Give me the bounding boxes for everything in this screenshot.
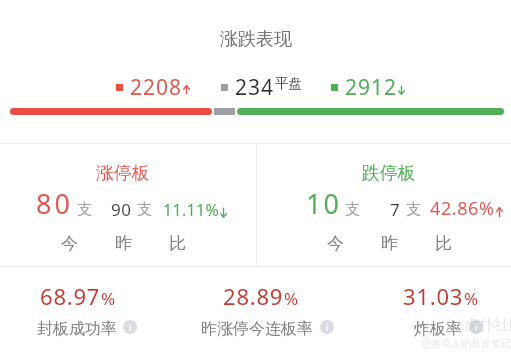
staticText: i — [129, 321, 132, 334]
button[interactable]: 封板成功率 — [37, 319, 117, 339]
staticText: 234 — [235, 73, 275, 97]
staticText: 昨涨停今连板率 — [201, 319, 313, 339]
staticText: i — [326, 321, 329, 334]
staticText: 42.86% — [430, 196, 495, 221]
staticText: 支 — [77, 200, 92, 219]
staticText: % — [101, 287, 116, 310]
button[interactable]: 234 — [221, 73, 302, 97]
staticText: 涨跌表现 — [220, 28, 292, 51]
staticText: 封板成功率 — [37, 319, 117, 339]
button[interactable]: 2912 — [331, 73, 405, 97]
staticText: % — [284, 287, 299, 310]
staticText: 支 — [137, 200, 152, 219]
button[interactable]: 昨涨停今连板率 — [201, 319, 313, 339]
staticText: 2912 — [345, 73, 398, 97]
button[interactable]: 炸板率 — [414, 319, 462, 339]
staticText: 31.03 — [403, 281, 464, 311]
staticText: 今 — [61, 233, 78, 254]
staticText: 90 — [111, 198, 132, 221]
staticText: 支 — [345, 200, 360, 219]
staticText: 涨停板 — [96, 162, 150, 184]
staticText: 平盘 — [275, 75, 302, 92]
button[interactable]: 说明 — [123, 320, 137, 334]
staticText: 今 — [327, 233, 344, 254]
staticText: 7 — [390, 198, 401, 221]
staticText: 11.11% — [163, 199, 219, 221]
staticText: 2208 — [130, 73, 183, 97]
staticText: 28.89 — [223, 281, 284, 311]
staticText: 支 — [406, 200, 421, 219]
staticText: @洛克人的投资笔记 — [422, 336, 511, 350]
button[interactable]: 说明 — [320, 320, 334, 334]
staticText: 比 — [169, 233, 186, 254]
staticText: 炸板率 — [414, 319, 462, 339]
staticText: 10 — [306, 185, 341, 221]
button[interactable]: 说明 — [469, 320, 483, 334]
staticText: 跌停板 — [362, 162, 416, 184]
staticText: 昨 — [381, 233, 398, 254]
staticText: 80 — [36, 185, 73, 221]
staticText: 虎扑社区 — [464, 316, 511, 335]
staticText: 68.97 — [40, 281, 101, 311]
button[interactable]: 2208 — [116, 73, 190, 97]
staticText: % — [464, 287, 479, 310]
staticText: i — [475, 321, 478, 334]
staticText: 昨 — [115, 233, 132, 254]
staticText: 比 — [435, 233, 452, 254]
